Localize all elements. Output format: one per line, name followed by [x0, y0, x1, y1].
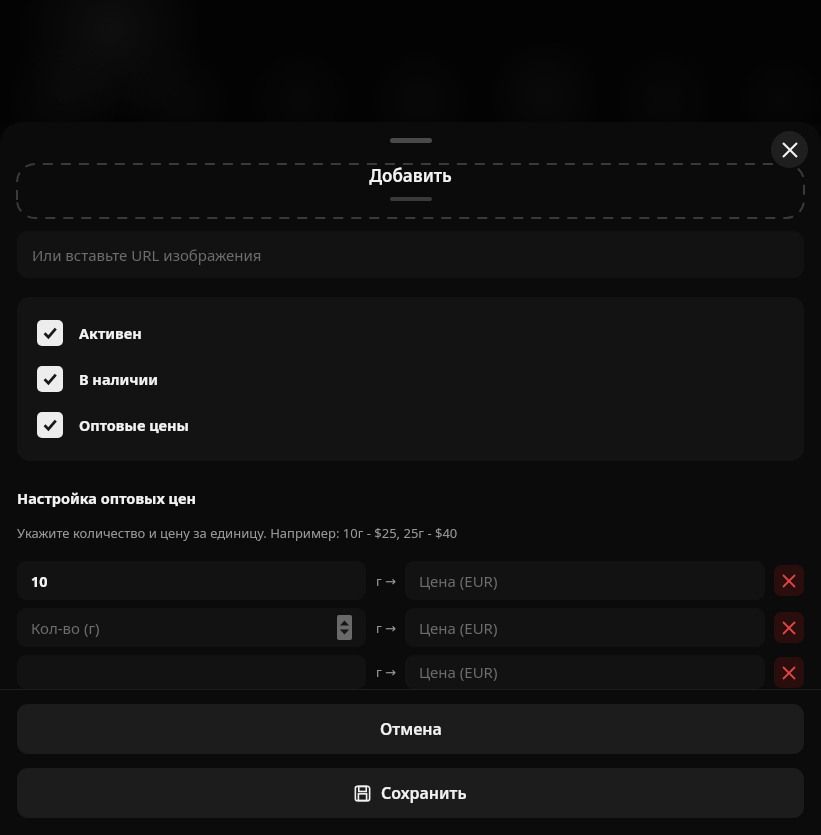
- button[interactable]: Оптовые цены: [17, 402, 804, 448]
- staticText: Добавить: [369, 164, 452, 187]
- staticText: Или вставьте URL изображения: [32, 245, 262, 265]
- staticText: Сохранить: [381, 782, 467, 804]
- staticText: Цена (EUR): [419, 571, 498, 591]
- button[interactable]: Цена (EUR): [405, 608, 765, 647]
- button[interactable]: Delete price row: [774, 657, 804, 688]
- staticText: Отмена: [380, 718, 442, 740]
- button[interactable]: Кол-во (г): [17, 608, 366, 647]
- button[interactable]: Отмена: [17, 704, 804, 754]
- staticText: 10: [31, 571, 48, 591]
- button[interactable]: В наличии: [17, 356, 804, 402]
- staticText: г →: [376, 572, 396, 590]
- staticText: Активен: [79, 323, 142, 343]
- button[interactable]: Цена (EUR): [405, 561, 765, 600]
- staticText: В наличии: [79, 369, 159, 389]
- staticText: Оптовые цены: [79, 415, 189, 435]
- button[interactable]: 10: [17, 561, 366, 600]
- button[interactable]: Активен: [17, 310, 804, 356]
- staticText: Настройка оптовых цен: [17, 488, 196, 508]
- staticText: г →: [376, 619, 396, 637]
- button[interactable]: Close: [771, 131, 808, 168]
- staticText: Кол-во (г): [31, 618, 100, 638]
- button[interactable]: Delete price row: [774, 565, 804, 596]
- staticText: Цена (EUR): [419, 662, 498, 682]
- button[interactable]: Цена (EUR): [405, 655, 765, 689]
- button[interactable]: Increment or decrement quantity: [337, 615, 352, 640]
- staticText: Укажите количество и цену за единицу. На…: [17, 524, 458, 542]
- staticText: г →: [376, 663, 396, 681]
- button[interactable]: Или вставьте URL изображения: [17, 231, 804, 278]
- staticText: Цена (EUR): [419, 618, 498, 638]
- button[interactable]: Сохранить: [17, 768, 804, 818]
- button[interactable]: Delete price row: [774, 612, 804, 643]
